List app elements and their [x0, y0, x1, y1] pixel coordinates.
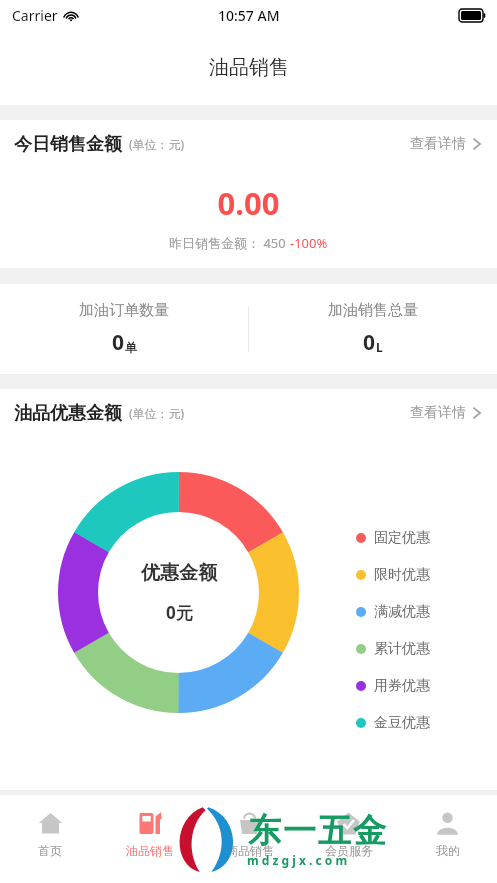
- staticText: 昨日销售金额： 450: [169, 234, 290, 252]
- staticText: 今日销售金额: [14, 133, 122, 156]
- staticText: Carrier: [12, 6, 58, 25]
- staticText: 东一五金: [247, 810, 387, 852]
- staticText: 商品销售: [226, 843, 274, 858]
- button[interactable]: 查看详情: [408, 129, 483, 159]
- staticText: 油品销售: [209, 55, 289, 80]
- staticText: 首页: [38, 843, 62, 858]
- staticText: m d z g j x . c o m: [247, 852, 348, 868]
- staticText: 0: [363, 328, 376, 357]
- button[interactable]: 油品销售: [100, 805, 200, 864]
- staticText: 油品销售: [126, 843, 174, 858]
- staticText: (单位：元): [129, 136, 185, 152]
- staticText: 优惠金额: [141, 561, 217, 585]
- staticText: 加油销售总量: [328, 301, 418, 320]
- staticText: 0: [112, 328, 125, 357]
- staticText: 用券优惠: [374, 677, 430, 695]
- button[interactable]: 我的: [398, 805, 497, 864]
- staticText: 0元: [166, 601, 193, 624]
- staticText: 加油订单数量: [79, 301, 169, 320]
- staticText: 单: [125, 340, 137, 355]
- staticText: 满减优惠: [374, 603, 430, 621]
- staticText: (单位：元): [129, 405, 185, 421]
- button[interactable]: 首页: [0, 805, 100, 864]
- button[interactable]: 查看详情: [408, 398, 483, 428]
- staticText: -100%: [290, 234, 328, 252]
- staticText: L: [376, 339, 383, 355]
- staticText: 0.00: [0, 182, 497, 224]
- staticText: 查看详情: [410, 135, 466, 153]
- staticText: 限时优惠: [374, 566, 430, 584]
- staticText: 金豆优惠: [374, 714, 430, 732]
- button[interactable]: 商品销售: [200, 805, 299, 864]
- button[interactable]: 会员服务: [299, 805, 398, 864]
- staticText: 我的: [436, 843, 460, 858]
- staticText: 10:57 AM: [218, 6, 280, 25]
- staticText: 会员服务: [325, 843, 373, 858]
- staticText: 累计优惠: [374, 640, 430, 658]
- staticText: 查看详情: [410, 404, 466, 422]
- staticText: 固定优惠: [374, 529, 430, 547]
- staticText: 油品优惠金额: [14, 402, 122, 425]
